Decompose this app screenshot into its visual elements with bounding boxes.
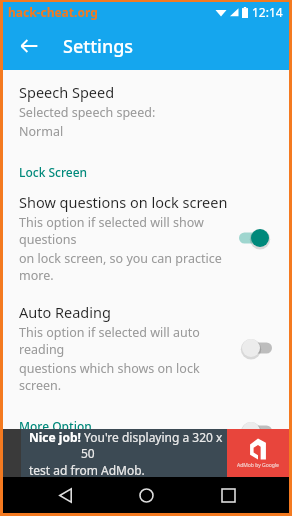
staticText: test ad from AdMob. [29,462,145,477]
staticText: You're displaying a 320 x 50 [81,429,227,461]
button[interactable]: Nice job! [21,429,289,477]
staticText: More Option [19,418,92,429]
staticText: questions which shows on lock screen. [19,360,233,394]
button[interactable]: Recents [208,477,248,513]
button[interactable]: Home [126,477,166,513]
staticText: Speech Speed [19,82,115,102]
button[interactable]: Speech Speed [3,80,289,142]
button[interactable]: Back [11,28,47,64]
button[interactable]: Back [45,477,85,513]
staticText: Auto Reading [19,302,111,322]
staticText: Lock Screen [19,164,88,180]
button[interactable]: Toggle on [239,226,277,250]
staticText: Normal [19,123,64,140]
button[interactable]: Auto Reading [3,300,289,396]
staticText: Show questions on lock screen [19,192,228,212]
staticText: Nice job! [29,429,81,445]
staticText: Selected speech speed: [19,104,156,121]
staticText: on lock screen, so you can practice more… [19,250,233,284]
staticText: This option if selected will auto readin… [19,324,233,358]
staticText: Settings [63,34,134,59]
staticText: hack-cheat.org [8,4,98,20]
staticText: 12:14 [252,4,283,20]
staticText: AdMob by Google [237,462,279,469]
staticText: This option if selected will show questi… [19,214,233,248]
button[interactable]: Toggle off [239,336,277,360]
button[interactable]: Show questions on lock screen [3,190,289,286]
